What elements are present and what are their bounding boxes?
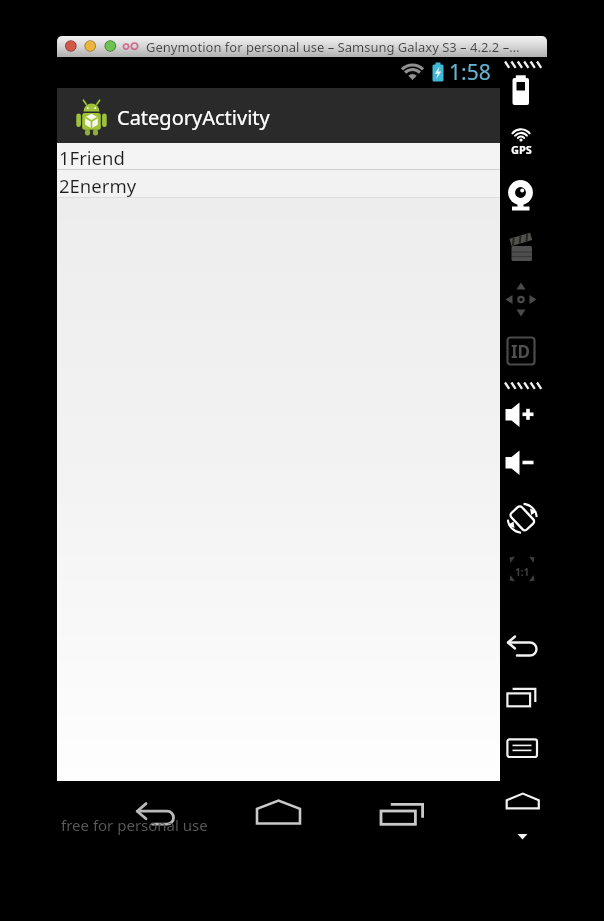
staticText: 2Enermy [59,173,137,198]
button[interactable] [508,828,538,844]
button[interactable] [503,126,539,158]
staticText: 1:1 [515,565,530,579]
button[interactable] [503,734,539,762]
staticText: Genymotion for personal use – Samsung Ga… [146,38,520,56]
button[interactable] [130,795,200,831]
button[interactable] [503,548,539,580]
button[interactable] [370,795,428,831]
button[interactable] [84,40,96,52]
button[interactable] [503,496,539,538]
staticText: GPS [511,142,532,156]
button[interactable] [503,176,539,212]
button[interactable] [503,280,539,318]
button[interactable] [57,143,500,170]
button[interactable] [503,446,539,478]
button[interactable] [503,398,539,430]
button[interactable] [65,40,77,52]
button[interactable] [248,795,310,831]
button[interactable] [503,228,539,266]
staticText: CategoryActivity [117,104,270,131]
button[interactable] [503,632,539,660]
button[interactable] [503,334,539,366]
button[interactable] [57,170,500,198]
button[interactable] [503,684,539,712]
button[interactable] [503,72,539,108]
staticText: 1:58 [449,58,491,87]
button[interactable] [503,788,539,814]
staticText: 1Friend [59,145,125,170]
staticText: free for personal use [61,815,208,835]
button[interactable] [104,40,116,52]
staticText: ID [511,340,531,363]
